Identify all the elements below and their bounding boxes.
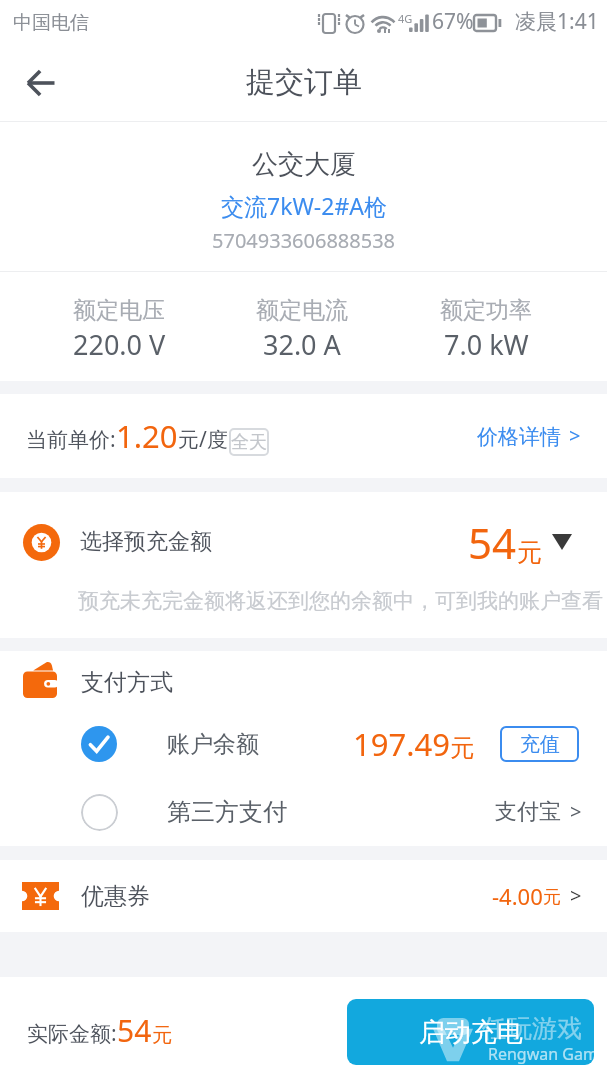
staticText: 7.0 kW [444,326,529,363]
staticText: 元/度 [178,425,228,454]
button[interactable]: 优惠券 [0,860,607,932]
staticText: 公交大厦 [252,148,356,181]
staticText: 元 [152,1023,172,1048]
staticText: 实际金额: [27,1019,117,1048]
staticText: 充值 [520,732,560,757]
staticText: 选择预充金额 [80,528,212,556]
staticText: 交流7kW-2#A枪 [221,190,387,221]
staticText: 54 [468,514,517,571]
staticText: 元 [517,537,542,568]
button[interactable]: 账户余额 [0,711,607,777]
staticText: 当前单价: [26,425,116,454]
staticText: > [570,798,582,825]
staticText: 4G [398,11,413,26]
button[interactable]: 当前单价: [0,394,607,478]
button[interactable]: 任玩游戏 [347,999,594,1065]
staticText: 中国电信 [13,11,89,35]
staticText: 支付方式 [81,668,173,697]
staticText: 优惠券 [81,882,150,911]
staticText: 支付宝 [495,798,561,826]
staticText: 元 [450,733,474,763]
staticText: 元 [543,886,561,909]
staticText: 全天 [231,431,267,454]
staticText: 5704933606888538 [212,227,396,254]
staticText: 额定功率 [440,296,532,325]
button[interactable]: Back [14,56,68,110]
staticText: 账户余额 [167,730,259,759]
staticText: 价格详情 [477,424,561,450]
staticText: 第三方支付 [167,797,287,827]
staticText: 启动充电 [419,1016,523,1049]
staticText: 任玩游戏 [482,1013,582,1044]
staticText: 1.20 [116,415,178,457]
staticText: > [570,882,582,909]
button[interactable]: 第三方支付 [0,780,607,844]
staticText: 凌晨1:41 [515,7,599,36]
staticText: 197.49 [353,723,450,765]
staticText: 额定电流 [256,296,348,325]
staticText: -4.00 [492,881,543,911]
staticText: 220.0 V [73,326,166,363]
staticText: 提交订单 [246,64,362,101]
staticText: 54 [117,1010,152,1051]
staticText: 预充未充完金额将返还到您的余额中，可到我的账户查看 [78,588,603,614]
button[interactable]: 选择预充金额 [0,492,607,592]
staticText: > [569,422,581,449]
staticText: Rengwan Games [488,1043,594,1065]
staticText: 额定电压 [73,296,165,325]
staticText: 32.0 A [263,326,341,363]
staticText: 67% [432,7,474,36]
button[interactable]: 充值 [500,726,579,762]
